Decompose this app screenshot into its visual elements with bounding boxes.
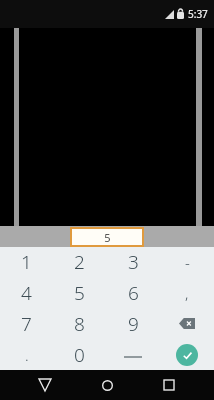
button[interactable]: 3 xyxy=(106,247,160,277)
staticText: 4 xyxy=(21,280,32,306)
button[interactable]: Recent apps xyxy=(152,370,186,400)
staticText: 5 xyxy=(104,230,111,245)
button[interactable]: 9 xyxy=(106,308,160,339)
staticText: 7 xyxy=(21,311,32,337)
button[interactable]: 5 xyxy=(70,227,144,247)
button[interactable]: . xyxy=(0,339,53,370)
button[interactable]: 0 xyxy=(53,339,106,370)
staticText: , xyxy=(185,283,189,303)
button[interactable]: 5 xyxy=(53,277,106,308)
staticText: 8 xyxy=(74,311,85,337)
button[interactable]: 7 xyxy=(0,308,53,339)
staticText: 6 xyxy=(128,280,139,306)
staticText: 3 xyxy=(128,249,139,275)
button[interactable]: 4 xyxy=(0,277,53,308)
button[interactable]: 1 xyxy=(0,247,53,277)
button[interactable]: Home xyxy=(90,370,124,400)
button[interactable]: , xyxy=(160,277,214,308)
staticText: 2 xyxy=(74,249,85,275)
staticText: 5 xyxy=(74,280,85,306)
button[interactable]: 2 xyxy=(53,247,106,277)
button[interactable]: Space xyxy=(106,339,160,370)
staticText: . xyxy=(25,345,29,365)
staticText: 1 xyxy=(21,249,32,275)
staticText: 9 xyxy=(128,311,139,337)
button[interactable]: Backspace xyxy=(160,308,214,339)
button[interactable]: - xyxy=(160,247,214,277)
button[interactable]: Confirm xyxy=(176,344,198,366)
button[interactable]: 8 xyxy=(53,308,106,339)
button[interactable]: Back xyxy=(28,370,62,400)
staticText: - xyxy=(185,252,190,272)
staticText: 0 xyxy=(74,342,85,368)
button[interactable]: 6 xyxy=(106,277,160,308)
staticText: 5:37 xyxy=(188,7,208,21)
